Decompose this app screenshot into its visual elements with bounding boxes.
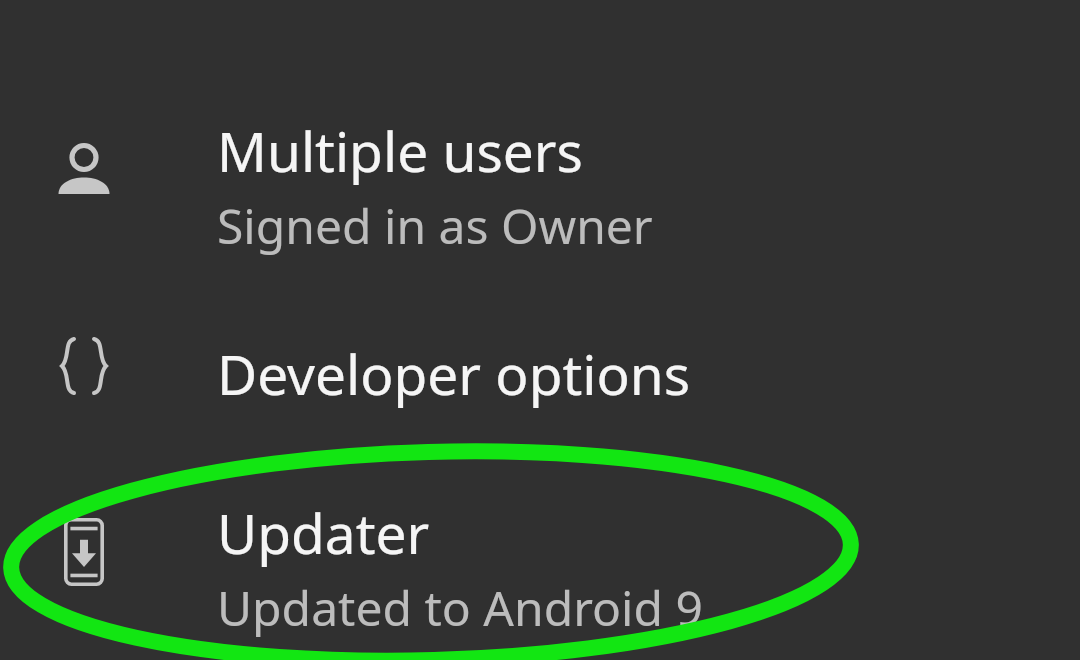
staticText: Updater [217, 495, 430, 570]
button[interactable]: Multiple users [0, 96, 1080, 261]
staticText: Multiple users [217, 113, 583, 188]
other: Updater [64, 518, 104, 586]
staticText: Updated to Android 9 [217, 575, 703, 640]
button[interactable]: Updater [0, 478, 1080, 643]
staticText: Signed in as Owner [217, 193, 653, 258]
button[interactable]: Developer options [0, 318, 1080, 418]
staticText: Developer options [217, 336, 691, 411]
